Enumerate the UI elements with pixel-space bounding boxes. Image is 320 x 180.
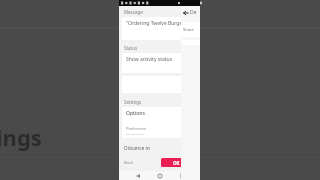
button[interactable]: Recents [178, 171, 187, 180]
button[interactable]: Show activity status [122, 53, 197, 73]
button[interactable]: Home [155, 171, 164, 180]
staticText: "Ordering Twelve Burger" [126, 20, 187, 27]
button[interactable]: Back [133, 171, 142, 180]
staticText: OK [173, 160, 180, 166]
button[interactable] [122, 76, 197, 93]
button[interactable]: Distance in [122, 144, 197, 153]
staticText: Settings [124, 99, 142, 105]
button[interactable]: Share [181, 22, 200, 37]
button[interactable]: OK [161, 158, 191, 167]
staticText: Options [126, 110, 145, 117]
staticText: Share [183, 27, 194, 32]
staticText: Show activity status [126, 56, 173, 63]
staticText: Preference [126, 126, 147, 131]
staticText: ings [0, 122, 42, 152]
button[interactable]: "Ordering Twelve Burger" [122, 17, 197, 40]
button[interactable]: Back [181, 8, 190, 17]
button[interactable]: Back [122, 158, 135, 167]
staticText: Status [124, 45, 138, 51]
button[interactable]: Options [122, 107, 197, 138]
staticText: Message [124, 9, 143, 15]
staticText: De [190, 9, 197, 16]
staticText: Distance in [124, 145, 150, 152]
